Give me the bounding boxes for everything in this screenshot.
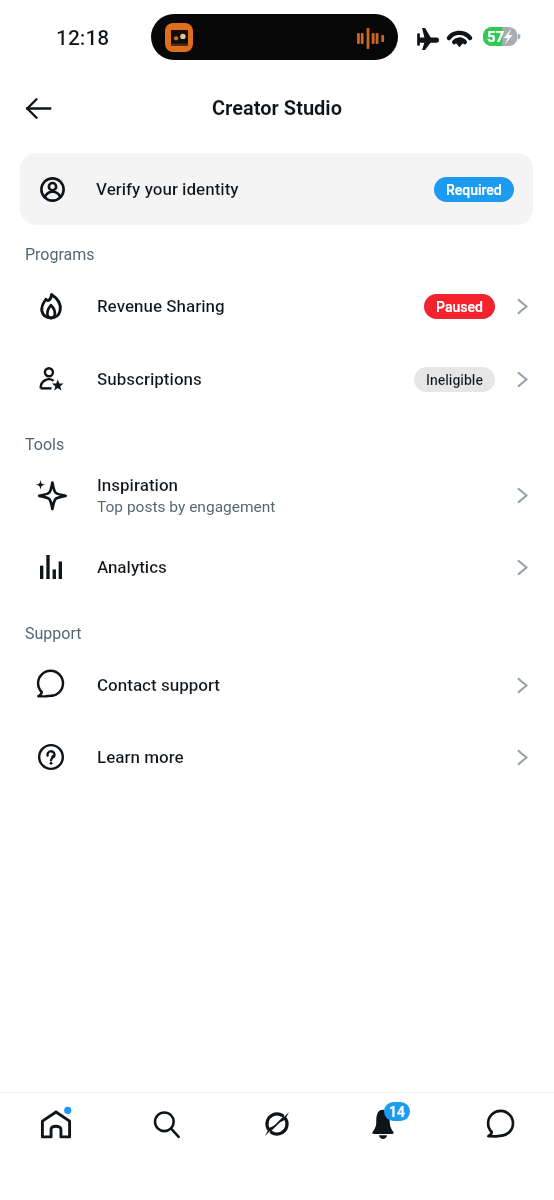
staticText: Subscriptions (97, 369, 202, 389)
button[interactable]: Revenue Sharing (0, 270, 554, 342)
button[interactable]: Inspiration (0, 459, 554, 531)
staticText: Tools (25, 435, 65, 454)
staticText: Contact support (97, 675, 221, 695)
staticText: Learn more (97, 747, 184, 767)
staticText: Ineligible (426, 372, 483, 388)
button[interactable]: Home (23, 1094, 89, 1154)
button[interactable]: Notifications (355, 1094, 421, 1154)
button[interactable]: Grok (244, 1094, 310, 1154)
button[interactable]: Contact support (0, 649, 554, 721)
staticText: 57 (487, 28, 505, 46)
staticText: Inspiration (97, 475, 179, 495)
staticText: Top posts by engagement (97, 498, 276, 516)
button[interactable]: Learn more (0, 721, 554, 793)
staticText: Creator Studio (212, 96, 342, 119)
staticText: Revenue Sharing (97, 296, 225, 316)
staticText: 14 (389, 1104, 405, 1120)
staticText: Paused (436, 299, 483, 315)
button[interactable]: Back (16, 86, 60, 130)
button[interactable]: Analytics (0, 531, 554, 603)
staticText: Analytics (97, 557, 167, 577)
button[interactable]: Search (133, 1094, 199, 1154)
button[interactable]: Verify your identity (20, 153, 533, 225)
staticText: Verify your identity (96, 179, 239, 199)
button[interactable]: Subscriptions (0, 343, 554, 415)
staticText: Required (446, 182, 502, 198)
staticText: 12:18 (56, 26, 110, 51)
staticText: Programs (25, 245, 95, 264)
button[interactable]: Messages (466, 1094, 532, 1154)
staticText: Support (25, 624, 82, 643)
